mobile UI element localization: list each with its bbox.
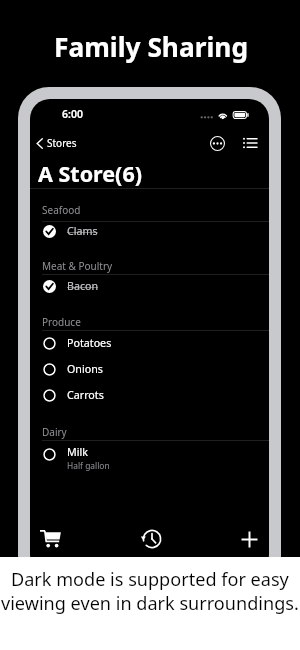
staticText: A Store(6) <box>38 159 142 188</box>
button[interactable]: Potatoes <box>30 330 269 356</box>
button[interactable]: Milk <box>30 441 269 467</box>
staticText: Meat & Poultry <box>42 259 113 273</box>
button[interactable]: More options <box>207 133 227 153</box>
staticText: Family Sharing <box>54 29 249 65</box>
staticText: Onions <box>67 362 103 377</box>
staticText: Bacon <box>67 279 99 294</box>
button[interactable]: Cart <box>30 518 110 560</box>
staticText: Potatoes <box>67 336 112 351</box>
button[interactable]: List view <box>240 133 260 153</box>
staticText: Produce <box>42 315 81 329</box>
button[interactable]: Add item <box>192 518 269 560</box>
staticText: viewing even in dark surroundings. <box>1 591 299 616</box>
staticText: Stores <box>47 136 77 150</box>
staticText: Milk <box>67 445 88 460</box>
staticText: Clams <box>67 224 98 239</box>
button[interactable]: Clams <box>30 218 269 244</box>
button[interactable]: History <box>111 518 191 560</box>
button[interactable]: Carrots <box>30 382 269 408</box>
staticText: Dairy <box>42 425 67 439</box>
button[interactable]: Onions <box>30 356 269 382</box>
button[interactable]: Bacon <box>30 273 269 299</box>
staticText: Half gallon <box>67 460 110 471</box>
staticText: Seafood <box>42 203 81 217</box>
button[interactable]: Stores <box>34 133 83 153</box>
staticText: 6:00 <box>62 107 83 121</box>
staticText: Carrots <box>67 388 104 403</box>
staticText: Dark mode is supported for easy <box>11 567 289 592</box>
